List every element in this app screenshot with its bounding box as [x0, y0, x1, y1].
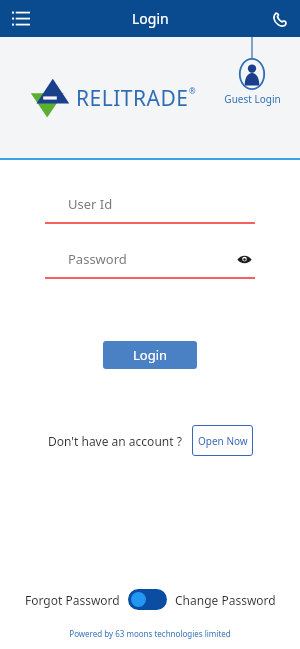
staticText: Login [133, 346, 168, 364]
button[interactable]: Call support [264, 4, 294, 34]
staticText: User Id [68, 195, 113, 213]
staticText: Don't have an account ? [48, 433, 182, 449]
button[interactable]: Show password [233, 248, 255, 270]
staticText: ® [189, 85, 196, 96]
button[interactable]: Password [45, 246, 255, 279]
staticText: Login [132, 9, 169, 28]
staticText: Guest Login [224, 92, 281, 106]
staticText: Powered by 63 moons technologies limited [0, 628, 300, 639]
staticText: RELITRADE [76, 84, 189, 113]
button[interactable]: Login [103, 341, 197, 369]
button[interactable]: Guest Login [221, 37, 283, 106]
staticText: Open Now [198, 434, 248, 448]
button[interactable]: Menu [6, 4, 36, 34]
button[interactable]: Open Now [192, 425, 253, 456]
button[interactable]: Change Password [175, 592, 276, 608]
button[interactable]: Toggle forgot or change password [128, 589, 167, 610]
button[interactable]: Forgot Password [25, 592, 120, 608]
staticText: Password [68, 250, 127, 268]
button[interactable]: User Id [45, 191, 255, 224]
